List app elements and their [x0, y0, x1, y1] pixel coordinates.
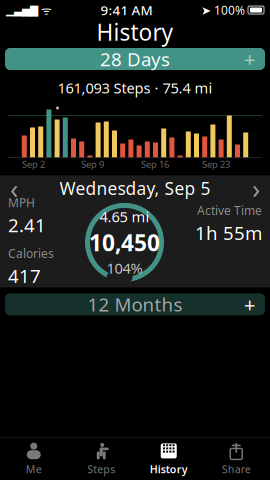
- staticText: 161,093 Steps · 75.4 mi: [57, 78, 212, 97]
- staticText: ᯤ: [38, 2, 52, 18]
- staticText: Sep 9: [81, 158, 104, 170]
- staticText: ▁▃▅▇: [6, 4, 38, 16]
- button[interactable]: History: [135, 441, 202, 477]
- button[interactable]: Me: [0, 441, 67, 477]
- staticText: Wednesday, Sep 5: [59, 177, 210, 200]
- staticText: Sep 23: [202, 158, 230, 170]
- button[interactable]: Next day: [242, 177, 270, 199]
- staticText: 12 Months: [87, 292, 182, 317]
- staticText: Sep 2: [22, 158, 45, 170]
- staticText: 2.41: [8, 213, 46, 237]
- staticText: Share: [222, 462, 251, 476]
- staticText: History: [150, 462, 188, 476]
- staticText: 10,450: [89, 227, 160, 257]
- staticText: ➤ 100%: [201, 2, 245, 18]
- staticText: 1h 55m: [195, 220, 262, 245]
- staticText: 104%: [106, 258, 142, 278]
- staticText: Sep 16: [141, 158, 169, 170]
- staticText: Active Time: [197, 202, 262, 218]
- button[interactable]: Previous day: [0, 177, 28, 199]
- staticText: +: [244, 46, 255, 72]
- staticText: Steps: [87, 462, 115, 476]
- button[interactable]: 12 Months: [5, 293, 265, 315]
- button[interactable]: Share: [202, 441, 270, 477]
- staticText: 417: [8, 263, 41, 288]
- staticText: ‹: [10, 171, 18, 206]
- button[interactable]: 28 Days: [5, 48, 265, 70]
- staticText: +: [244, 291, 255, 318]
- staticText: Calories: [8, 245, 54, 261]
- staticText: 4.65 mi: [99, 207, 149, 226]
- staticText: 9:41 AM: [100, 1, 152, 19]
- staticText: History: [96, 17, 173, 47]
- button[interactable]: Steps: [67, 441, 135, 477]
- staticText: Me: [26, 462, 42, 476]
- staticText: MPH: [8, 195, 35, 210]
- staticText: ›: [252, 171, 260, 206]
- staticText: 28 Days: [100, 47, 170, 71]
